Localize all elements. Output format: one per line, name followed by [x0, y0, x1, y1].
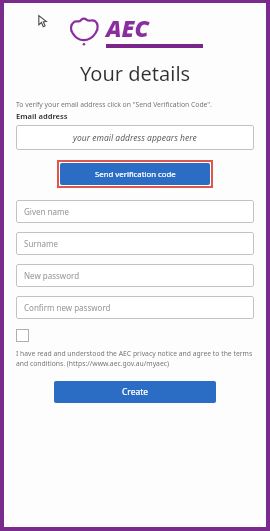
- staticText: Given name: [24, 206, 69, 217]
- staticText: Create: [122, 386, 149, 398]
- button[interactable]: Confirm new password: [16, 296, 254, 319]
- staticText: To verify your email address click on "S…: [16, 100, 212, 109]
- staticText: Email address: [16, 111, 68, 121]
- button[interactable]: Agree to the terms and conditions: [16, 329, 29, 342]
- staticText: Send verification code: [95, 169, 176, 180]
- staticText: Your details: [80, 60, 191, 87]
- staticText: I have read and understood the AEC priva…: [16, 349, 254, 368]
- button[interactable]: your email address appears here: [16, 125, 254, 150]
- button[interactable]: Create: [54, 381, 216, 403]
- staticText: New password: [24, 270, 80, 281]
- staticText: Confirm new password: [24, 302, 111, 313]
- button[interactable]: Surname: [16, 232, 254, 255]
- button[interactable]: Send verification code: [60, 163, 210, 185]
- button[interactable]: New password: [16, 264, 254, 287]
- staticText: AEC: [106, 12, 149, 43]
- staticText: your email address appears here: [73, 132, 197, 144]
- staticText: Surname: [24, 238, 59, 249]
- button[interactable]: Given name: [16, 200, 254, 223]
